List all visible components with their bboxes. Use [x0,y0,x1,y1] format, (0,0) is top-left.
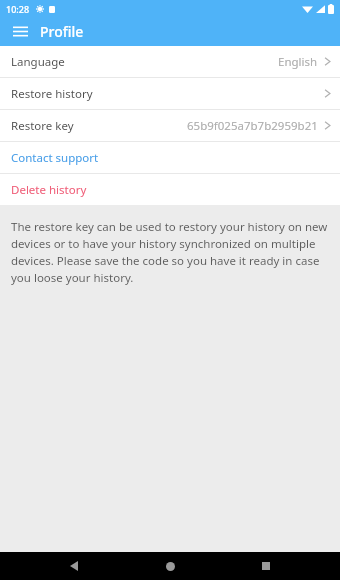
button[interactable]: Open navigation menu [0,17,40,46]
staticText: Restore key [11,118,74,134]
staticText: English [278,54,318,70]
staticText: 10:28 [6,3,30,15]
staticText: Profile [40,22,84,41]
staticText: Restore history [11,86,93,102]
button[interactable]: Recent apps [244,552,288,580]
staticText: Language [11,54,65,70]
staticText: The restore key can be used to restory y… [11,219,329,286]
staticText: 65b9f025a7b7b2959b21 [187,118,318,134]
button[interactable]: Back [52,552,96,580]
button[interactable]: Restore key [0,110,340,141]
staticText: Contact support [11,150,99,166]
button[interactable]: Delete history [0,174,340,205]
button[interactable]: Restore history [0,78,340,109]
button[interactable]: Contact support [0,142,340,173]
button[interactable]: Home [148,552,192,580]
staticText: Delete history [11,182,87,198]
button[interactable]: Language [0,46,340,77]
